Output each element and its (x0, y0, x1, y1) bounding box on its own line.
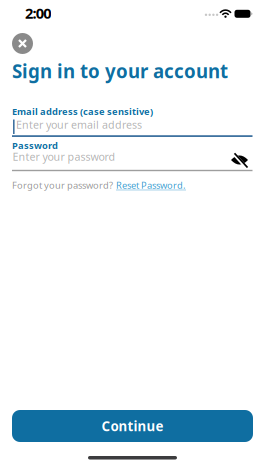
staticText: Forgot your password? (12, 179, 113, 191)
button[interactable]: Continue (12, 410, 253, 442)
button[interactable]: Reset Password. (116, 179, 186, 191)
staticText: Password (12, 139, 58, 152)
button[interactable]: Show password (230, 154, 248, 165)
staticText: Email address (case sensitive) (12, 105, 153, 118)
staticText: Sign in to your account (12, 59, 228, 83)
button[interactable]: Close (12, 33, 33, 54)
staticText: 2:00 (25, 3, 51, 23)
staticText: Enter your password (12, 149, 115, 164)
staticText: Reset Password. (116, 179, 186, 191)
staticText: Continue (101, 417, 163, 435)
staticText: Enter your email address (16, 117, 142, 132)
